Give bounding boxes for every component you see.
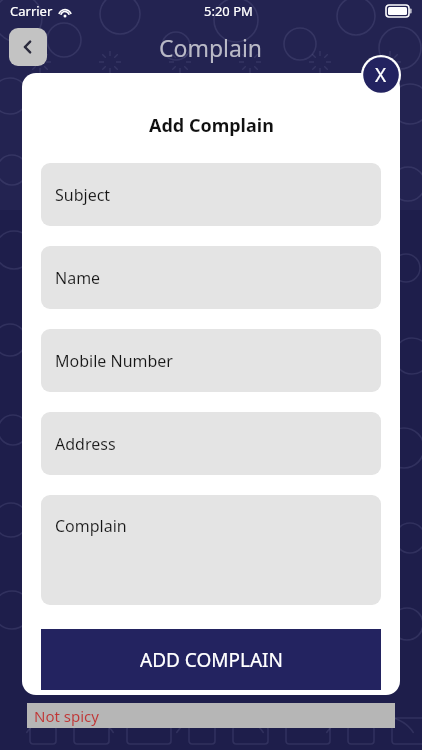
button[interactable]: Name <box>41 246 381 309</box>
button[interactable]: Address <box>41 412 381 475</box>
staticText: Complain <box>159 32 263 63</box>
button[interactable]: Close <box>361 55 401 95</box>
staticText: Add Complain <box>149 113 274 138</box>
staticText: Name <box>55 267 101 289</box>
button[interactable]: Complain <box>41 495 381 605</box>
staticText: Subject <box>55 184 111 206</box>
staticText: Complain <box>55 515 127 537</box>
staticText: Not spicy <box>34 706 99 726</box>
staticText: Mobile Number <box>55 350 173 372</box>
button[interactable]: ADD COMPLAIN <box>41 629 381 690</box>
button[interactable]: Mobile Number <box>41 329 381 392</box>
staticText: Carrier <box>10 2 53 20</box>
staticText: ADD COMPLAIN <box>140 647 283 673</box>
button[interactable]: Back <box>9 28 47 66</box>
staticText: Address <box>55 433 116 455</box>
staticText: X <box>375 62 387 88</box>
staticText: 5:20 PM <box>204 2 253 20</box>
button[interactable]: Subject <box>41 163 381 226</box>
